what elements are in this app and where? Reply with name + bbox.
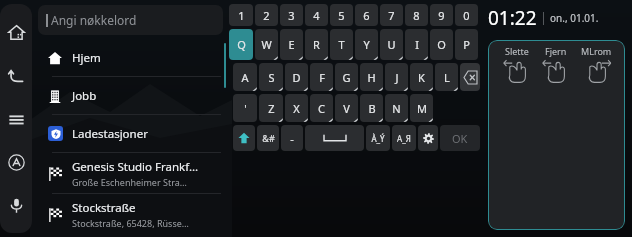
staticText: D (292, 70, 301, 85)
button[interactable]: Hjem (38, 39, 221, 76)
button[interactable]: Microphone (1, 190, 31, 220)
staticText: W (261, 37, 272, 52)
button[interactable]: W (255, 29, 278, 60)
button[interactable]: - (281, 125, 303, 151)
staticText: 1 (238, 8, 245, 23)
staticText: Q (237, 37, 246, 52)
staticText: A (241, 70, 249, 85)
button[interactable]: Space (305, 125, 364, 151)
button[interactable]: Handwriting input area (488, 40, 625, 230)
button[interactable]: Assistant (1, 147, 31, 177)
staticText: V (343, 101, 350, 116)
staticText: 7 (388, 8, 395, 23)
button[interactable]: U (380, 29, 403, 60)
button[interactable]: H (360, 63, 383, 91)
button[interactable]: À_Ý (366, 125, 390, 151)
staticText: Genesis Studio Frankf… (72, 159, 198, 175)
button[interactable]: OK (440, 125, 480, 151)
button[interactable]: X (285, 94, 308, 122)
button[interactable]: F (310, 63, 333, 91)
button[interactable]: N (385, 94, 408, 122)
staticText: B (368, 101, 376, 116)
staticText: 9 (438, 8, 445, 23)
button[interactable]: L (435, 63, 458, 91)
staticText: Jobb (72, 88, 97, 104)
staticText: 4 (313, 8, 320, 23)
button[interactable]: S (259, 63, 283, 91)
button[interactable]: Menu (1, 104, 31, 134)
button[interactable]: 6 (355, 4, 378, 26)
button[interactable]: Back (1, 60, 31, 90)
button[interactable]: 8 (405, 4, 428, 26)
button[interactable]: V (335, 94, 358, 122)
button[interactable]: 0 (455, 4, 478, 26)
staticText: 01:22 (488, 5, 537, 31)
staticText: ' (244, 101, 247, 116)
staticText: S (268, 70, 275, 85)
staticText: Fjern (545, 45, 567, 57)
button[interactable]: 2 (255, 4, 278, 26)
staticText: OK (452, 131, 468, 146)
button[interactable]: M (410, 94, 433, 122)
button[interactable]: Y (355, 29, 378, 60)
staticText: E (288, 37, 295, 52)
staticText: Y (363, 37, 370, 52)
button[interactable]: A (233, 63, 257, 91)
button[interactable]: 4 (305, 4, 328, 26)
button[interactable]: Backspace (460, 63, 480, 91)
staticText: O (437, 37, 446, 52)
button[interactable]: K (410, 63, 433, 91)
staticText: L (444, 70, 450, 85)
button[interactable]: D (285, 63, 308, 91)
button[interactable]: 3 (280, 4, 303, 26)
button[interactable]: R (305, 29, 328, 60)
button[interactable]: Angi nøkkelord (38, 5, 223, 35)
staticText: I (415, 37, 419, 52)
staticText: Ladestasjoner (72, 126, 148, 142)
staticText: C (318, 101, 325, 116)
button[interactable]: ' (233, 94, 257, 122)
button[interactable]: I (405, 29, 428, 60)
staticText: 6 (363, 8, 370, 23)
button[interactable]: P (455, 29, 478, 60)
staticText: &# (262, 132, 275, 144)
button[interactable]: &# (257, 125, 279, 151)
button[interactable]: E (280, 29, 303, 60)
button[interactable]: O (430, 29, 453, 60)
button[interactable]: 1 (229, 4, 253, 26)
staticText: P (463, 37, 470, 52)
staticText: Stockstraße (72, 200, 136, 216)
button[interactable]: 5 (330, 4, 353, 26)
staticText: on., 01.01. (550, 11, 599, 25)
staticText: N (392, 101, 401, 116)
staticText: H (367, 70, 376, 85)
staticText: Große Eschenheimer Stra… (72, 176, 187, 188)
staticText: 0 (463, 8, 470, 23)
staticText: R (313, 37, 320, 52)
staticText: 5 (338, 8, 345, 23)
button[interactable]: Settings (418, 125, 438, 151)
staticText: X (293, 101, 300, 116)
button[interactable]: Stockstraße (38, 194, 221, 234)
staticText: U (387, 37, 396, 52)
button[interactable]: Jobb (38, 77, 221, 114)
button[interactable]: Shift (233, 125, 255, 151)
button[interactable]: Home (1, 17, 31, 47)
staticText: T (338, 37, 345, 52)
button[interactable]: А_Я (392, 125, 416, 151)
staticText: Hjem (72, 50, 101, 66)
staticText: Stockstraße, 65428, Rüsse… (72, 217, 189, 229)
button[interactable]: T (330, 29, 353, 60)
button[interactable]: G (335, 63, 358, 91)
button[interactable]: B (360, 94, 383, 122)
button[interactable]: Genesis Studio Frankf… (38, 153, 221, 193)
button[interactable]: J (385, 63, 408, 91)
staticText: - (290, 131, 294, 146)
button[interactable]: 9 (430, 4, 453, 26)
button[interactable]: Q (229, 29, 253, 60)
button[interactable]: 7 (380, 4, 403, 26)
button[interactable]: Ladestasjoner (38, 115, 221, 152)
button[interactable]: C (310, 94, 333, 122)
button[interactable]: Z (259, 94, 283, 122)
staticText: 8 (413, 8, 420, 23)
